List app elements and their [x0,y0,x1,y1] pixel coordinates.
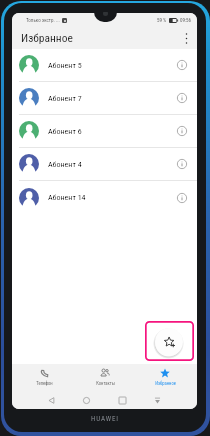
staticText: Абонент 4 [48,160,82,169]
button[interactable]: Абонент 14 [12,181,197,214]
button[interactable]: Home [79,393,93,407]
staticText: HUAWEI [91,415,119,423]
button[interactable]: Add favourite [155,328,183,356]
staticText: 09:56 [180,17,192,23]
staticText: Абонент 6 [48,127,82,136]
button[interactable]: Details [173,56,191,74]
staticText: Избранное [155,381,176,386]
staticText: Избранное [21,31,73,44]
button[interactable]: Back [44,393,58,407]
button[interactable]: Абонент 7 [12,82,197,115]
button[interactable]: Телефон [15,364,73,390]
staticText: Абонент 5 [48,61,82,70]
button[interactable]: Details [173,155,191,173]
staticText: Телефон [36,381,53,386]
button[interactable]: Абонент 5 [12,49,197,82]
staticText: Абонент 7 [48,94,82,103]
button[interactable]: More options [175,27,197,49]
staticText: Абонент 14 [48,193,86,202]
button[interactable]: Контакты [76,364,134,390]
staticText: Контакты [96,381,115,386]
button[interactable]: Абонент 6 [12,115,197,148]
button[interactable]: Hide keyboard [150,393,164,407]
staticText: 59 % [157,17,167,23]
staticText: Только экстр. ... [26,17,60,23]
button[interactable]: Details [173,89,191,107]
button[interactable]: Details [173,189,191,207]
button[interactable]: Recents [115,393,129,407]
button[interactable]: Details [173,122,191,140]
button[interactable]: Абонент 4 [12,148,197,181]
button[interactable]: Избранное [136,364,194,390]
